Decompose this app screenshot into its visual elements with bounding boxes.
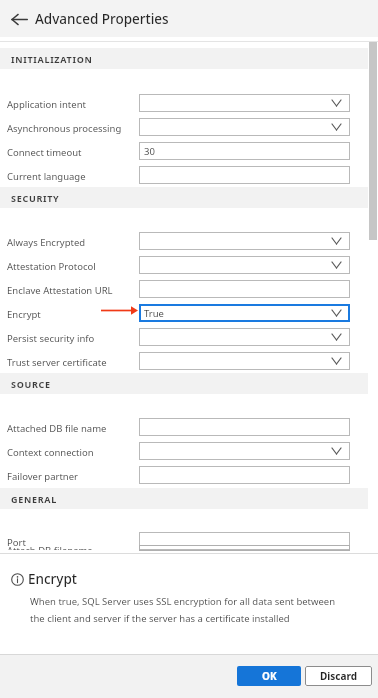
staticText: Port (7, 536, 26, 549)
button[interactable]: OK (237, 666, 301, 686)
staticText: SOURCE (11, 378, 51, 390)
staticText: Context connection (7, 446, 94, 459)
staticText: OK (262, 669, 277, 683)
button[interactable]: Application intent (0, 92, 378, 114)
staticText: Trust server certificate (7, 356, 107, 369)
staticText: Attached DB file name (7, 422, 107, 435)
staticText: Attach DB filename (7, 544, 93, 550)
button[interactable]: Context connection (0, 440, 378, 462)
staticText: Advanced Properties (35, 10, 169, 28)
button[interactable]: Attestation Protocol (0, 254, 378, 276)
staticText: Always Encrypted (7, 236, 86, 249)
button[interactable]: Asynchronous processing (0, 116, 378, 138)
staticText: 30 (144, 145, 155, 158)
button[interactable]: Discard (305, 666, 372, 686)
staticText: INITIALIZATION (11, 53, 93, 65)
button[interactable]: Trust server certificate (0, 350, 378, 372)
button[interactable]: Current language (0, 164, 378, 186)
button[interactable]: Enclave Attestation URL (0, 278, 378, 300)
staticText: GENERAL (11, 493, 57, 505)
staticText: Discard (320, 669, 358, 683)
staticText: Encrypt (7, 308, 41, 321)
button[interactable]: Connect timeout (0, 140, 378, 162)
button[interactable]: Always Encrypted (0, 230, 378, 252)
button[interactable]: Attached DB file name (0, 416, 378, 438)
staticText: When true, SQL Server uses SSL encryptio… (30, 595, 350, 624)
staticText: Asynchronous processing (7, 122, 122, 135)
staticText: Failover partner (7, 470, 78, 483)
button[interactable]: Port (0, 530, 378, 552)
button[interactable]: Failover partner (0, 464, 378, 486)
staticText: Current language (7, 170, 86, 183)
staticText: SECURITY (11, 192, 60, 204)
staticText: Enclave Attestation URL (7, 284, 113, 297)
button[interactable]: Back (6, 6, 32, 32)
staticText: True (144, 307, 164, 320)
staticText: Application intent (7, 98, 86, 111)
button[interactable]: Persist security info (0, 326, 378, 348)
staticText: Connect timeout (7, 146, 82, 159)
staticText: Attestation Protocol (7, 260, 96, 273)
staticText: Persist security info (7, 332, 95, 345)
staticText: Encrypt (28, 570, 77, 588)
button[interactable]: Encrypt (0, 302, 378, 324)
